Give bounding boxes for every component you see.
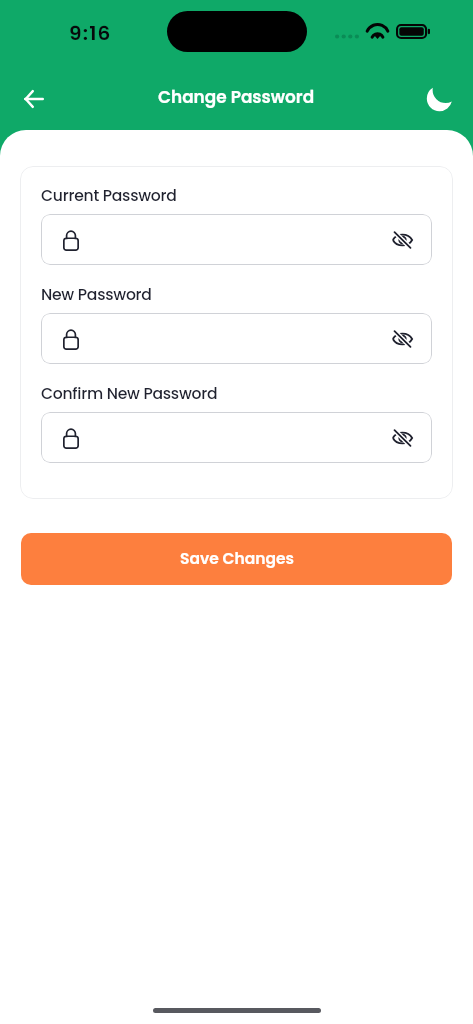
- button[interactable]: Save Changes: [21, 533, 452, 585]
- button[interactable]: Show password: [385, 322, 419, 356]
- button[interactable]: Show password: [41, 214, 432, 265]
- staticText: Change Password: [158, 85, 315, 109]
- button[interactable]: Toggle dark mode: [417, 76, 462, 121]
- staticText: Confirm New Password: [41, 383, 218, 404]
- button[interactable]: Show password: [385, 421, 419, 455]
- button[interactable]: Show password: [385, 223, 419, 257]
- staticText: 9:16: [69, 19, 112, 47]
- staticText: Save Changes: [180, 548, 294, 570]
- staticText: Current Password: [41, 185, 177, 206]
- staticText: New Password: [41, 284, 152, 305]
- button[interactable]: Back: [11, 76, 56, 121]
- button[interactable]: Show password: [41, 412, 432, 463]
- button[interactable]: Show password: [41, 313, 432, 364]
